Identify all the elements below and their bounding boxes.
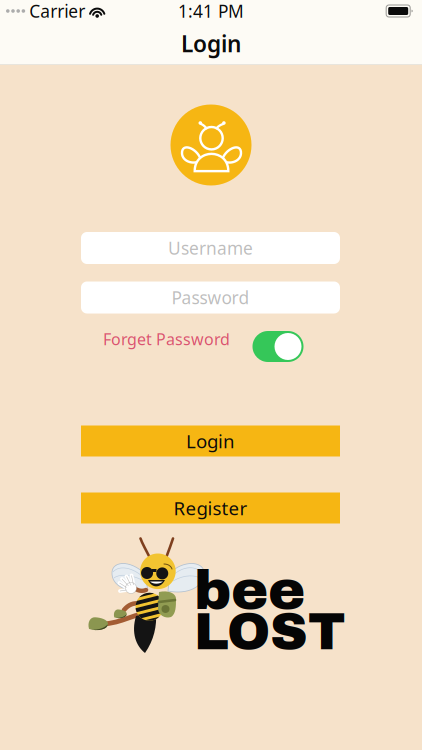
button[interactable]: Remember me — [252, 331, 303, 362]
staticText: Username — [168, 236, 253, 259]
staticText: Forget Password — [103, 328, 230, 350]
staticText: bee — [194, 560, 305, 621]
button[interactable]: Forget Password — [103, 329, 233, 349]
button[interactable]: Register — [81, 492, 340, 523]
button[interactable]: Password — [81, 281, 340, 313]
button[interactable]: Login — [81, 425, 340, 456]
button[interactable]: Username — [81, 232, 340, 264]
staticText: LOST — [194, 604, 346, 660]
staticText: Register — [173, 496, 247, 520]
staticText: Carrier — [29, 0, 85, 22]
staticText: 1:41 PM — [178, 0, 244, 22]
staticText: Password — [171, 286, 249, 309]
staticText: Login — [181, 28, 241, 58]
staticText: Login — [186, 429, 235, 453]
